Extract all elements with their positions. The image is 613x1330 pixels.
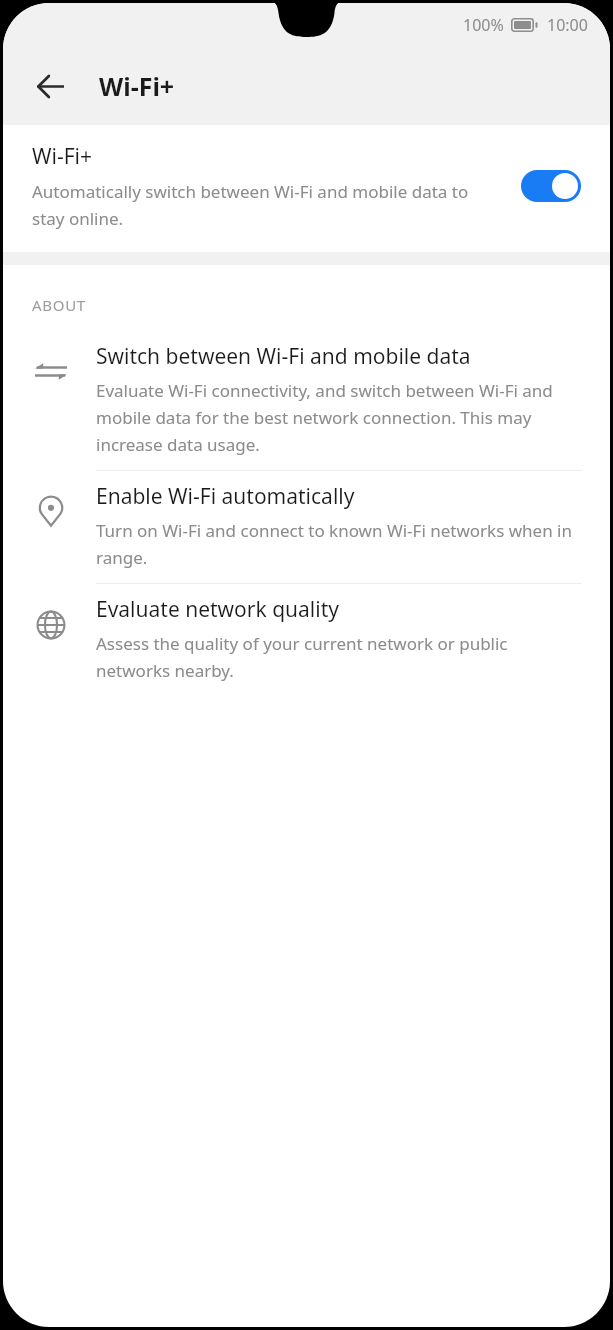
staticText: ABOUT [32,295,86,315]
staticText: 100% [463,14,504,36]
staticText: Automatically switch between Wi-Fi and m… [32,180,505,230]
staticText: Assess the quality of your current netwo… [96,632,582,682]
button[interactable]: Enable Wi-Fi automatically [3,471,610,584]
staticText: 10:00 [547,14,588,36]
button[interactable]: Wi-Fi+ toggle, on [521,170,581,202]
staticText: Turn on Wi-Fi and connect to known Wi-Fi… [96,519,582,569]
button[interactable]: Back [25,61,75,111]
staticText: Wi-Fi+ [99,69,175,103]
staticText: Evaluate network quality [96,595,339,624]
button[interactable]: Switch between Wi-Fi and mobile data [3,331,610,471]
button[interactable]: Wi-Fi+ [3,125,610,252]
staticText: Switch between Wi-Fi and mobile data [96,342,471,371]
button[interactable]: Evaluate network quality [3,584,610,696]
staticText: Enable Wi-Fi automatically [96,482,355,511]
staticText: Evaluate Wi-Fi connectivity, and switch … [96,379,582,456]
staticText: Wi-Fi+ [32,142,93,171]
